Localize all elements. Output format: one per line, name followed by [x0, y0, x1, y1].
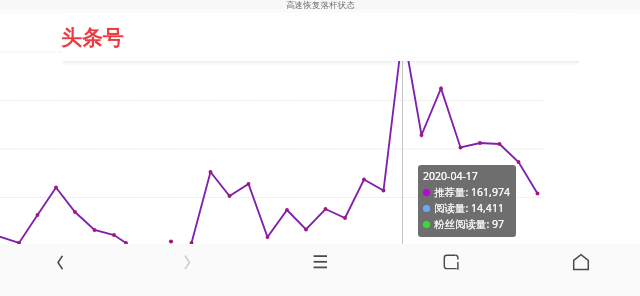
staticText: 推荐量: 161,974	[434, 185, 510, 199]
staticText: 2020-04-17	[423, 169, 478, 183]
button[interactable]: Back	[31, 244, 87, 296]
staticText: 头条号	[61, 25, 124, 51]
button[interactable]: Tabs	[423, 244, 479, 296]
button[interactable]: Menu	[292, 244, 348, 296]
staticText: 高速恢复落杆状态	[286, 0, 355, 11]
button[interactable]: Forward	[161, 244, 217, 296]
staticText: 阅读量: 14,411	[434, 201, 504, 215]
staticText: 粉丝阅读量: 97	[434, 217, 505, 231]
button[interactable]: Home	[553, 244, 609, 296]
